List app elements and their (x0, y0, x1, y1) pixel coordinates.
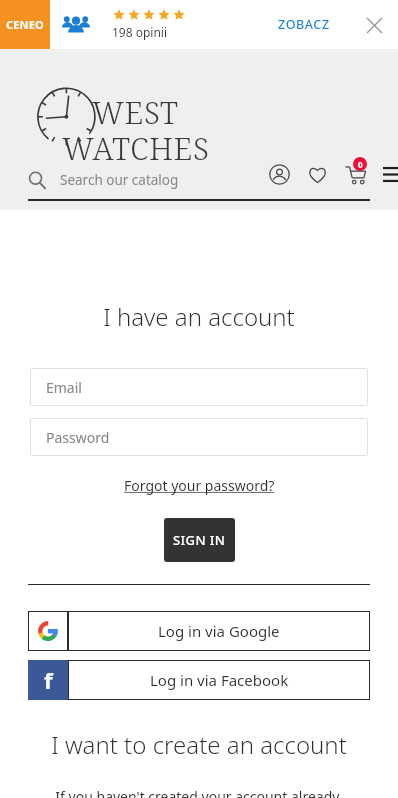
staticText: SIGN IN (173, 531, 226, 549)
staticText: f (44, 665, 53, 695)
button[interactable]: Email (30, 368, 368, 406)
staticText: WEST (92, 91, 179, 133)
button[interactable]: Log in via Google (28, 611, 370, 651)
button[interactable]: Close (360, 11, 388, 39)
button[interactable]: Account (266, 161, 292, 187)
staticText: Forgot your password? (124, 476, 275, 495)
staticText: I want to create an account (0, 728, 398, 761)
button[interactable]: Ceneo (0, 0, 50, 49)
staticText: Password (46, 428, 110, 447)
staticText: Log in via Facebook (150, 670, 289, 690)
staticText: 0 (358, 159, 363, 170)
staticText: Search our catalog (60, 171, 179, 189)
button[interactable]: SIGN IN (164, 518, 235, 562)
staticText: Email (46, 378, 82, 397)
button[interactable]: Forgot your password? (120, 474, 279, 497)
staticText: ZOBACZ (278, 16, 330, 33)
staticText: I have an account (0, 300, 398, 333)
button[interactable]: Cart (342, 161, 368, 187)
staticText: If you haven't created your account alre… (0, 787, 398, 798)
button[interactable]: West Watches home (30, 87, 248, 171)
button[interactable]: ZOBACZ (272, 10, 336, 39)
button[interactable]: f (28, 660, 370, 700)
button[interactable]: Password (30, 418, 368, 456)
button[interactable]: Wishlist (304, 161, 330, 187)
staticText: 198 opinii (112, 24, 168, 40)
staticText: CENEO (6, 17, 45, 32)
staticText: Log in via Google (158, 621, 280, 641)
staticText: WATCHES (62, 127, 210, 169)
button[interactable]: Menu (380, 161, 398, 187)
